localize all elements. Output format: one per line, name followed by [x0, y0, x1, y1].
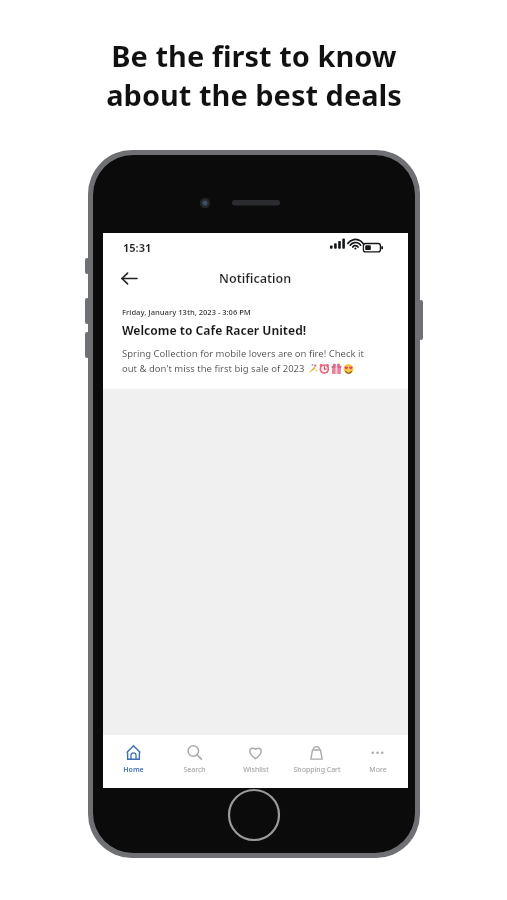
- button[interactable]: Home: [103, 735, 164, 788]
- staticText: Wishlist: [243, 765, 269, 775]
- staticText: out & don't miss the first big sale of 2…: [122, 362, 307, 375]
- staticText: about the best deals: [106, 75, 402, 114]
- button[interactable]: Wishlist: [225, 735, 286, 788]
- button[interactable]: Back: [113, 262, 145, 294]
- staticText: Home: [123, 765, 144, 775]
- staticText: Welcome to Cafe Racer United!: [122, 322, 307, 338]
- button[interactable]: More: [347, 735, 408, 788]
- button[interactable]: Friday, January 13th, 2023 - 3:06 PM: [103, 295, 408, 389]
- staticText: Friday, January 13th, 2023 - 3:06 PM: [122, 307, 251, 317]
- button[interactable]: Shopping Cart: [286, 735, 347, 788]
- staticText: More: [369, 765, 387, 775]
- staticText: Notification: [219, 270, 292, 287]
- staticText: Spring Collection for mobile lovers are …: [122, 347, 364, 360]
- staticText: Shopping Cart: [293, 765, 341, 775]
- staticText: 15:31: [123, 240, 152, 255]
- staticText: Be the first to know: [111, 36, 397, 75]
- staticText: Search: [183, 765, 206, 775]
- button[interactable]: Search: [164, 735, 225, 788]
